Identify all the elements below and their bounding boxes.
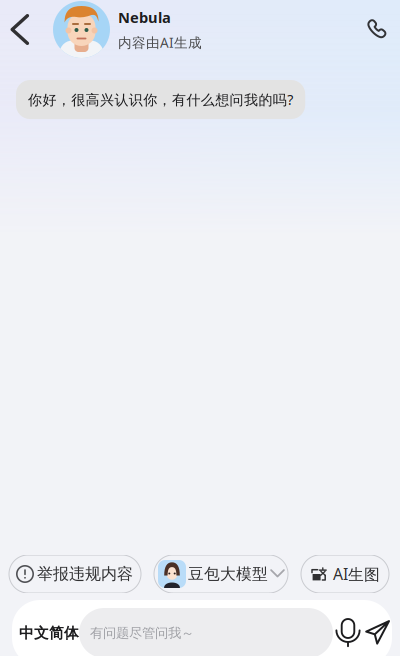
staticText: 你好，很高兴认识你，有什么想问我的吗?	[28, 90, 293, 109]
button[interactable]: 豆包大模型	[154, 555, 288, 593]
staticText: 豆包大模型	[188, 564, 268, 584]
button[interactable]: Send	[364, 600, 392, 656]
button[interactable]: Back	[4, 0, 36, 59]
button[interactable]: Voice call	[355, 0, 400, 59]
staticText: 内容由AI生成	[118, 33, 202, 52]
staticText: 有问题尽管问我～	[90, 625, 194, 641]
button[interactable]: AI生图	[301, 555, 389, 593]
staticText: Nebula	[118, 7, 171, 27]
staticText: 中文简体	[19, 624, 79, 642]
staticText: 举报违规内容	[37, 564, 133, 584]
button[interactable]: 中文简体	[12, 600, 79, 656]
staticText: AI生图	[333, 563, 380, 585]
button[interactable]: Voice input	[333, 600, 364, 656]
button[interactable]: 举报违规内容	[9, 555, 141, 593]
